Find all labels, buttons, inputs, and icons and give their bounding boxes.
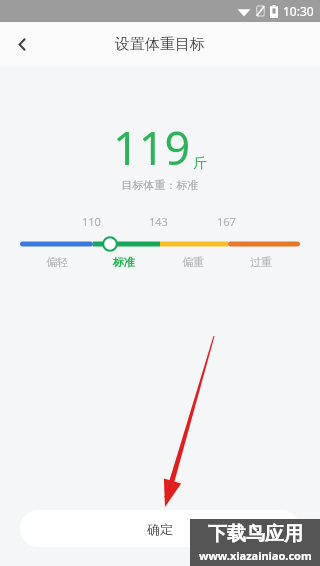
staticText: 10:30: [283, 3, 314, 19]
staticText: 设置体重目标: [115, 35, 205, 54]
staticText: 标准: [113, 255, 135, 269]
button[interactable]: Back: [0, 22, 44, 66]
button[interactable]: [0, 235, 320, 255]
staticText: 下载鸟应用: [208, 522, 303, 546]
staticText: 目标体重：标准: [0, 178, 320, 192]
staticText: 偏重: [182, 255, 204, 269]
staticText: 143: [149, 214, 168, 229]
staticText: 110: [82, 214, 101, 229]
staticText: 167: [217, 214, 236, 229]
staticText: 斤: [193, 155, 207, 173]
staticText: 偏轻: [46, 255, 68, 269]
staticText: 确定: [147, 521, 173, 537]
button[interactable]: 确定: [20, 510, 300, 547]
staticText: www.xiazainiao.com: [199, 548, 312, 563]
staticText: 119: [113, 117, 191, 178]
staticText: 过重: [250, 255, 272, 269]
